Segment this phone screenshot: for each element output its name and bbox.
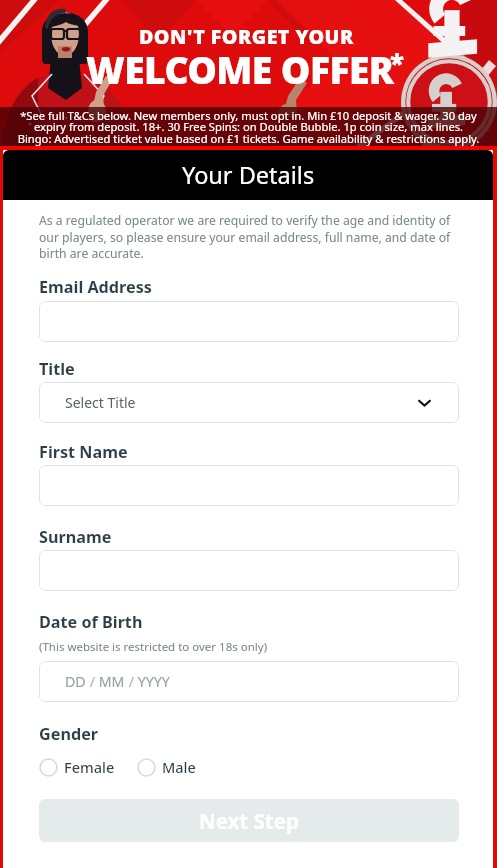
staticText: YYYY — [134, 672, 170, 691]
button[interactable] — [39, 301, 459, 342]
staticText: *See full T&Cs below. New members only, … — [4, 108, 493, 146]
staticText: Email Address — [39, 276, 152, 298]
staticText: DON'T FORGET YOUR — [139, 23, 354, 50]
staticText: MM — [95, 672, 125, 691]
staticText: Title — [39, 358, 75, 380]
staticText: Next Step — [199, 807, 299, 835]
button[interactable]: Select Title — [39, 382, 459, 423]
staticText: As a regulated operator we are required … — [39, 212, 459, 261]
staticText: (This website is restricted to over 18s … — [39, 639, 268, 655]
button[interactable]: Male — [137, 757, 196, 777]
staticText: Female — [64, 757, 115, 777]
staticText: WELCOME OFFER — [86, 44, 394, 95]
button[interactable] — [39, 465, 459, 506]
staticText: First Name — [39, 441, 128, 463]
button[interactable]: Female — [39, 757, 115, 777]
staticText: Your Details — [182, 159, 315, 191]
staticText: / — [125, 672, 134, 691]
staticText: / — [86, 672, 95, 691]
staticText: Surname — [39, 526, 112, 548]
button[interactable]: Next Step — [39, 799, 459, 842]
staticText: Date of Birth — [39, 611, 143, 633]
button[interactable] — [39, 550, 459, 591]
staticText: DD — [65, 672, 86, 691]
staticText: Select Title — [65, 393, 136, 412]
staticText: Gender — [39, 723, 99, 745]
staticText: * — [390, 45, 404, 80]
button[interactable]: DD — [39, 661, 459, 702]
staticText: Male — [162, 757, 196, 777]
